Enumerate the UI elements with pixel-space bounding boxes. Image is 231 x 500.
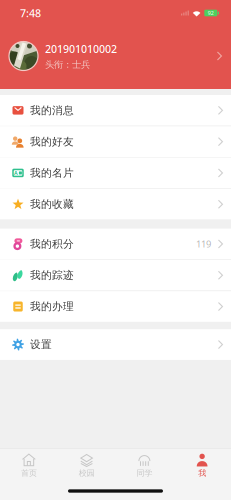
staticText: 119: [196, 238, 211, 250]
staticText: 我的踪迹: [30, 269, 74, 282]
button[interactable]: 我的踪迹: [0, 260, 231, 291]
staticText: 201901010002: [45, 42, 117, 56]
staticText: 首页: [21, 468, 37, 478]
button[interactable]: 设置: [0, 329, 231, 360]
staticText: 我的办理: [30, 300, 74, 313]
staticText: 我的消息: [30, 104, 74, 117]
staticText: 我的积分: [30, 237, 74, 250]
staticText: 设置: [30, 338, 52, 351]
button[interactable]: A: [0, 158, 231, 188]
staticText: 我的收藏: [30, 198, 74, 211]
button[interactable]: 我的好友: [0, 126, 231, 157]
staticText: 92: [208, 9, 214, 17]
button[interactable]: 我的消息: [0, 95, 231, 126]
staticText: 头衔：士兵: [45, 59, 90, 70]
staticText: 我的名片: [30, 166, 74, 179]
button[interactable]: 校园: [58, 446, 116, 484]
button[interactable]: 我的收藏: [0, 189, 231, 220]
button[interactable]: 201901010002: [0, 26, 231, 86]
staticText: 我的好友: [30, 135, 74, 148]
staticText: 校园: [79, 468, 95, 478]
button[interactable]: 我的办理: [0, 291, 231, 322]
button[interactable]: 我: [173, 446, 231, 484]
staticText: 我: [198, 468, 206, 478]
button[interactable]: 同学: [115, 446, 173, 484]
staticText: 7:48: [20, 6, 41, 20]
staticText: 同学: [136, 468, 152, 478]
button[interactable]: 首页: [0, 446, 58, 484]
staticText: A: [14, 169, 18, 176]
button[interactable]: 我的积分: [0, 229, 231, 259]
